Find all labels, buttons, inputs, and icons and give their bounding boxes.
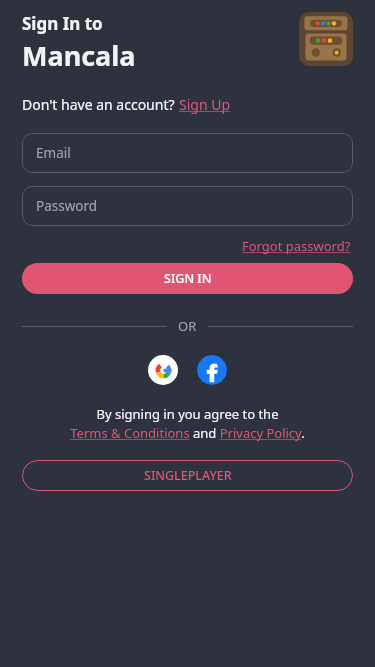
button[interactable]: SINGLEPLAYER: [22, 460, 353, 491]
other: Mancala app icon: [299, 12, 353, 66]
button[interactable]: Sign Up: [179, 95, 231, 114]
staticText: Sign In to: [22, 12, 103, 35]
staticText: SIGN IN: [164, 270, 212, 287]
button[interactable]: Forgot password?: [240, 235, 353, 257]
staticText: Password: [36, 197, 98, 215]
button[interactable]: Sign in with Google: [148, 355, 178, 385]
staticText: By signing in you agree to the Terms & C…: [22, 405, 353, 442]
button[interactable]: Password: [22, 186, 353, 226]
button[interactable]: Email: [22, 133, 353, 173]
staticText: SINGLEPLAYER: [144, 467, 232, 484]
staticText: Don't have an account?: [22, 95, 179, 114]
staticText: Sign Up: [179, 95, 231, 114]
staticText: Email: [36, 144, 71, 162]
button[interactable]: Sign in with Facebook: [197, 355, 227, 385]
button[interactable]: SIGN IN: [22, 263, 353, 294]
staticText: Forgot password?: [242, 237, 351, 255]
staticText: OR: [178, 317, 197, 335]
staticText: Mancala: [22, 37, 136, 74]
